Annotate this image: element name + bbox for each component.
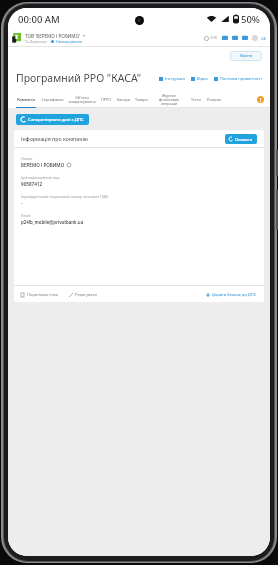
button[interactable]: Додати більше до ДПС: [206, 292, 257, 297]
staticText: Політика приватності: [220, 76, 262, 81]
button[interactable]: Відео: [191, 76, 208, 81]
button[interactable]: Касири: [116, 91, 130, 107]
staticText: Сертифікати: [41, 97, 64, 102]
button[interactable]: [12, 33, 22, 43]
button[interactable]: Політика приватності: [214, 76, 262, 81]
button[interactable]: Warning: [257, 96, 264, 103]
staticText: ▾: [83, 34, 85, 38]
staticText: -: [21, 200, 23, 206]
button[interactable]: Notifications: [232, 35, 238, 41]
staticText: Синхронізувати дані з ДПС: [28, 117, 84, 123]
staticText: 00:00 AM: [18, 13, 60, 26]
staticText: Інформація про компанію: [21, 135, 89, 142]
staticText: БЕРЕМО І РОБИМО: [21, 162, 65, 168]
button[interactable]: Об'єкти оподаткування: [68, 91, 96, 107]
button[interactable]: Інструкція: [159, 76, 185, 81]
button[interactable]: Сертифікати: [40, 91, 64, 107]
staticText: Назва:: [21, 156, 33, 161]
staticText: 90587412: [21, 181, 43, 187]
staticText: 3700: [210, 36, 218, 40]
button[interactable]: Товари: [134, 91, 148, 107]
staticText: Касири: [117, 97, 130, 102]
staticText: Компанія: [17, 97, 35, 102]
button[interactable]: Тести: [190, 91, 202, 107]
staticText: 50%: [241, 13, 260, 26]
staticText: Розділи: [207, 97, 221, 102]
button[interactable]: Компанія: [16, 91, 36, 107]
staticText: !: [260, 97, 262, 103]
staticText: Об'єкти оподаткування: [68, 95, 96, 104]
staticText: ТОВ 'БЕРЕМО І РОБИМО': [25, 33, 81, 39]
staticText: Відео: [197, 76, 208, 81]
button[interactable]: Вийти: [230, 51, 262, 61]
staticText: Email:: [21, 213, 32, 218]
staticText: Редагувати: [75, 292, 97, 297]
button[interactable]: Messages: [222, 35, 228, 41]
staticText: Податкова гілка: [27, 292, 59, 297]
staticText: Та Директор: [25, 39, 47, 44]
button[interactable]: Журнал фінансових операцій: [152, 91, 186, 107]
staticText: Журнал фінансових операцій: [152, 93, 186, 106]
staticText: Інструкція: [165, 76, 185, 81]
staticText: Товари: [135, 97, 148, 102]
staticText: ПРРО: [101, 97, 111, 102]
button[interactable]: ПРРО: [100, 91, 112, 107]
button[interactable]: Archive: [242, 35, 248, 41]
staticText: Тести: [191, 97, 201, 102]
staticText: Оновити: [235, 137, 253, 142]
button[interactable]: Розділи: [206, 91, 222, 107]
button[interactable]: Синхронізувати дані з ДПС: [21, 114, 84, 125]
staticText: Програмний РРО "КАСА": [16, 71, 142, 85]
button[interactable]: Info: [67, 163, 71, 167]
staticText: Індивідуальний податковий номер платника…: [21, 194, 109, 199]
staticText: p24lb_mobile@privatbank.ua: [21, 219, 84, 225]
staticText: Вийти: [240, 53, 253, 59]
button[interactable]: Редагувати: [69, 292, 97, 297]
button[interactable]: UA: [261, 36, 266, 41]
staticText: Додати більше до ДПС: [212, 292, 257, 297]
staticText: Ідентифікаційний код:: [21, 175, 60, 180]
button[interactable]: Податкова гілка: [21, 292, 59, 297]
button[interactable]: Call: [204, 36, 209, 41]
button[interactable]: Оновити: [229, 134, 253, 144]
staticText: Налаштування: [56, 39, 83, 44]
button[interactable]: Profile: [252, 35, 258, 41]
